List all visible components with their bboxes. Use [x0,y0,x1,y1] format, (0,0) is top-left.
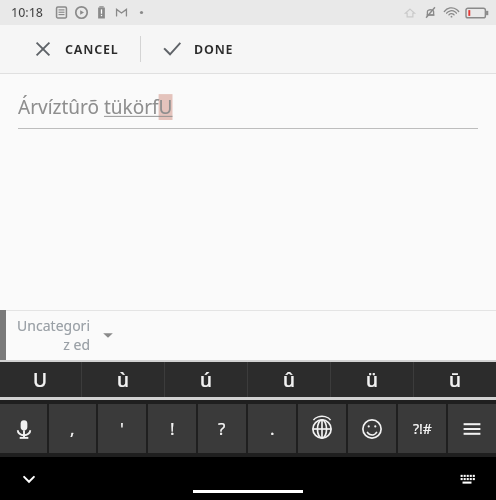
button[interactable]: Apostrophe [98,404,146,453]
button[interactable]: Exclamation [148,404,196,453]
staticText: ' [120,417,124,440]
staticText: DONE [194,41,234,58]
button[interactable]: ū [414,362,496,397]
staticText: Árvíztûrõ tükörfU [18,94,173,120]
button[interactable]: Switch keyboard [452,464,482,494]
button[interactable]: Emoji [348,404,396,453]
button[interactable]: ù [82,362,164,397]
button[interactable]: û [248,362,330,397]
button[interactable]: ü [331,362,413,397]
staticText: CANCEL [65,41,119,58]
staticText: , [70,417,75,440]
staticText: 10:18 [11,4,44,21]
staticText: . [270,417,275,440]
staticText: û [283,367,295,393]
button[interactable]: Uncategoriz ed [6,310,141,360]
staticText: ù [117,367,129,393]
button[interactable]: Change language [298,404,346,453]
button[interactable]: CANCEL [0,25,140,73]
staticText: Uncategoriz ed [12,316,90,354]
button[interactable]: Hide keyboard [14,464,44,494]
staticText: U [33,367,48,393]
staticText: ü [366,367,378,393]
staticText: ! [170,417,175,440]
button[interactable]: Period [248,404,296,453]
staticText: ? [218,417,226,440]
button[interactable]: Question mark [198,404,246,453]
staticText: ū [449,367,461,393]
button[interactable]: Comma [49,404,96,453]
button[interactable]: ú [165,362,247,397]
staticText: ú [200,367,212,393]
button[interactable]: Symbols [398,404,446,453]
button[interactable]: U [0,362,81,397]
staticText: ?!# [413,419,432,438]
button[interactable]: Microphone [0,404,47,453]
button[interactable]: Menu [448,404,496,453]
button[interactable]: DONE [141,25,258,73]
